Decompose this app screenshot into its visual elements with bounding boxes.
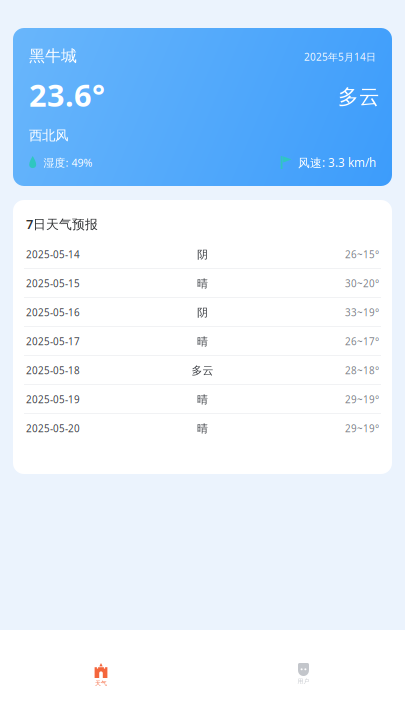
staticText: 2025-05-18 xyxy=(26,364,80,377)
staticText: 2025-05-15 xyxy=(26,277,80,290)
staticText: 29~19° xyxy=(345,422,379,435)
staticText: 晴 xyxy=(197,277,208,290)
staticText: 2025-05-20 xyxy=(26,422,80,435)
staticText: 2025-05-16 xyxy=(26,306,80,319)
staticText: 阴 xyxy=(197,306,208,319)
staticText: 2025年5月14日 xyxy=(304,50,376,64)
staticText: 阴 xyxy=(197,248,208,261)
staticText: 23.6° xyxy=(29,74,105,116)
staticText: 29~19° xyxy=(345,393,379,406)
staticText: 晴 xyxy=(197,335,208,348)
button[interactable]: 用户 xyxy=(202,663,405,720)
staticText: 33~19° xyxy=(345,306,379,319)
staticText: 26~15° xyxy=(345,248,379,261)
staticText: 2025-05-17 xyxy=(26,335,80,348)
staticText: 多云 xyxy=(338,84,380,110)
staticText: 湿度: 49% xyxy=(43,155,92,170)
staticText: 30~20° xyxy=(345,277,379,290)
staticText: 天气 xyxy=(95,679,107,687)
staticText: 用户 xyxy=(297,677,309,685)
staticText: 26~17° xyxy=(345,335,379,348)
staticText: 晴 xyxy=(197,422,208,435)
staticText: 2025-05-14 xyxy=(26,248,80,261)
staticText: 晴 xyxy=(197,393,208,406)
staticText: 多云 xyxy=(191,364,213,377)
staticText: 风速: 3.3 km/h xyxy=(298,154,376,170)
staticText: 2025-05-19 xyxy=(26,393,80,406)
staticText: 黑牛城 xyxy=(29,46,77,66)
button[interactable]: 天气 xyxy=(0,663,202,720)
staticText: 28~18° xyxy=(345,364,379,377)
staticText: 西北风 xyxy=(29,127,68,144)
staticText: 7日天气预报 xyxy=(26,215,98,233)
